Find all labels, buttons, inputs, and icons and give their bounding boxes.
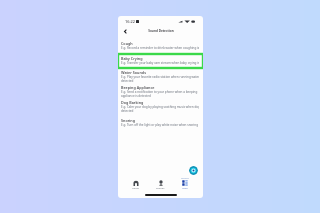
button[interactable]: Snoring: [118, 118, 203, 127]
staticText: E.g. Transfer your baby cam stream when …: [121, 61, 199, 65]
staticText: Sounds: [156, 186, 165, 189]
staticText: Apps: [182, 186, 188, 189]
button[interactable]: Water Sounds: [118, 70, 203, 83]
staticText: Sound Detection: [148, 29, 174, 33]
button[interactable]: Sounds: [153, 177, 168, 189]
button[interactable]: Baby Crying: [118, 56, 203, 65]
button[interactable]: Devices: [178, 177, 192, 189]
staticText: E.g. Send a notification to your phone w…: [121, 90, 198, 94]
button[interactable]: Back: [121, 27, 129, 35]
button[interactable]: Home: [129, 177, 142, 189]
button[interactable]: Beeping Appliance: [118, 85, 203, 98]
staticText: Water Sounds: [121, 70, 146, 75]
staticText: Cough: [121, 41, 133, 46]
staticText: E.g. Record a reminder to drink water wh…: [121, 46, 199, 50]
staticText: E.g. Calm your dog by playing soothing m…: [121, 105, 199, 109]
staticText: E.g. Turn off the light or play white no…: [121, 123, 199, 127]
button[interactable]: Add sound detection: [189, 166, 198, 175]
staticText: 16:22: [125, 19, 135, 24]
staticText: detected: [121, 79, 134, 83]
staticText: Baby Crying: [121, 56, 143, 61]
staticText: detected: [121, 109, 134, 113]
button[interactable]: Cough: [118, 41, 203, 50]
staticText: Beeping Appliance: [121, 85, 155, 90]
staticText: Dog Barking: [121, 100, 144, 105]
staticText: Snoring: [121, 118, 135, 123]
button[interactable]: Dog Barking: [118, 100, 203, 113]
staticText: Devices: [181, 177, 189, 180]
staticText: E.g. Play your favorite radio station wh…: [121, 75, 199, 79]
staticText: Home: [132, 186, 139, 189]
staticText: appliance is detected: [121, 94, 151, 98]
